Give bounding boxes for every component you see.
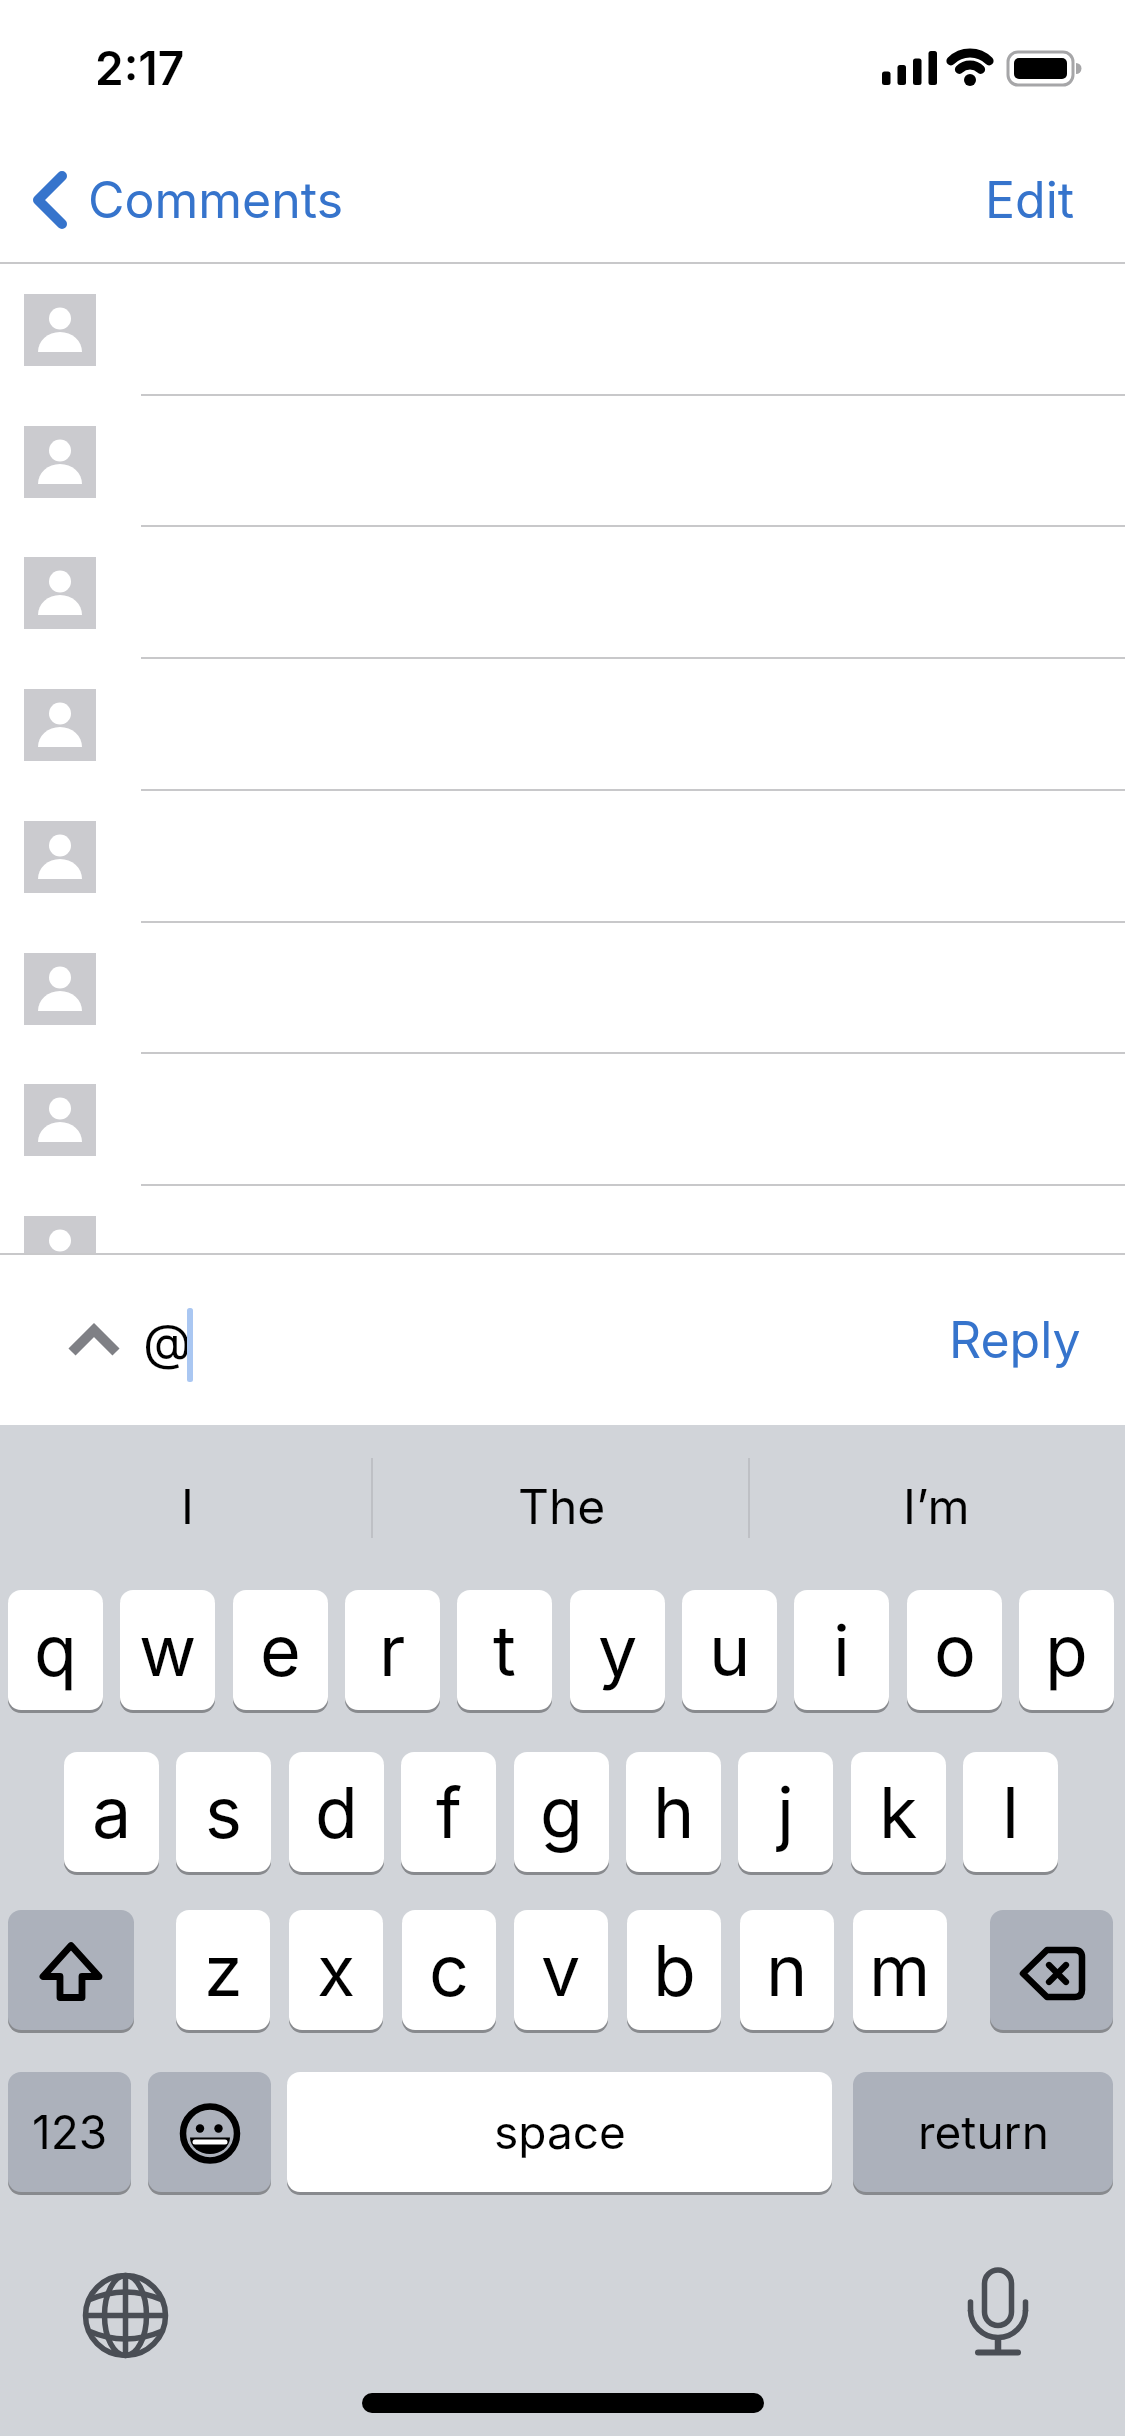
staticText: 2:17 (95, 40, 185, 96)
button[interactable]: j (738, 1752, 833, 1872)
button[interactable]: r (345, 1590, 440, 1710)
button[interactable]: z (176, 1910, 270, 2030)
staticText: f (436, 1770, 462, 1855)
staticText: g (540, 1770, 583, 1855)
staticText: c (429, 1928, 469, 2013)
button[interactable] (0, 526, 1125, 658)
staticText: The (518, 1477, 606, 1535)
button[interactable]: Edit (960, 162, 1100, 238)
button[interactable]: i (794, 1590, 889, 1710)
button[interactable]: g (514, 1752, 609, 1872)
button[interactable]: q (8, 1590, 103, 1710)
staticText: b (653, 1928, 696, 2013)
button[interactable] (148, 2072, 271, 2192)
staticText: a (92, 1770, 132, 1855)
staticText: o (934, 1608, 976, 1693)
button[interactable] (0, 263, 1125, 395)
staticText: Reply (949, 1310, 1081, 1370)
button[interactable]: w (120, 1590, 215, 1710)
staticText: @ (143, 1312, 192, 1372)
button[interactable]: p (1019, 1590, 1114, 1710)
button[interactable]: e (233, 1590, 328, 1710)
button[interactable] (52, 1312, 136, 1372)
button[interactable] (0, 922, 1125, 1054)
staticText: n (766, 1928, 808, 2013)
staticText: I’m (903, 1477, 970, 1535)
button[interactable]: o (907, 1590, 1002, 1710)
staticText: 123 (32, 2104, 108, 2160)
staticText: z (204, 1928, 243, 2013)
button[interactable]: n (740, 1910, 834, 2030)
staticText: m (869, 1928, 931, 2013)
button[interactable]: t (457, 1590, 552, 1710)
button[interactable]: h (626, 1752, 721, 1872)
button[interactable] (73, 2264, 177, 2368)
button[interactable]: I (0, 1425, 375, 1587)
button[interactable]: space (287, 2072, 832, 2192)
button[interactable]: Reply (930, 1305, 1100, 1375)
staticText: return (918, 2104, 1049, 2160)
staticText: u (709, 1608, 751, 1693)
button[interactable]: m (853, 1910, 947, 2030)
staticText: y (598, 1608, 638, 1693)
staticText: Comments (88, 170, 344, 230)
button[interactable]: u (682, 1590, 777, 1710)
button[interactable]: Comments (20, 162, 350, 238)
staticText: v (541, 1928, 581, 2013)
button[interactable]: b (627, 1910, 721, 2030)
button[interactable]: a (64, 1752, 159, 1872)
button[interactable]: x (289, 1910, 383, 2030)
staticText: q (34, 1608, 77, 1693)
button[interactable]: k (851, 1752, 946, 1872)
staticText: i (833, 1608, 850, 1693)
staticText: s (205, 1770, 242, 1855)
staticText: I (181, 1477, 194, 1535)
button[interactable] (0, 1053, 1125, 1185)
button[interactable]: c (402, 1910, 496, 2030)
staticText: d (315, 1770, 358, 1855)
staticText: l (1002, 1770, 1019, 1855)
staticText: Edit (985, 170, 1075, 230)
button[interactable]: return (853, 2072, 1113, 2192)
button[interactable] (950, 2255, 1050, 2365)
button[interactable]: The (375, 1425, 748, 1587)
button[interactable] (0, 1185, 1125, 1317)
button[interactable] (0, 790, 1125, 922)
staticText: t (493, 1608, 516, 1693)
staticText: w (139, 1608, 197, 1693)
staticText: r (379, 1608, 406, 1693)
staticText: j (777, 1770, 794, 1855)
button[interactable]: l (963, 1752, 1058, 1872)
button[interactable]: v (514, 1910, 608, 2030)
staticText: k (879, 1770, 918, 1855)
button[interactable]: I’m (748, 1425, 1125, 1587)
staticText: h (653, 1770, 695, 1855)
button[interactable] (8, 1910, 134, 2030)
button[interactable] (0, 658, 1125, 790)
button[interactable] (990, 1910, 1113, 2030)
staticText: space (494, 2104, 626, 2160)
button[interactable]: d (289, 1752, 384, 1872)
button[interactable]: f (401, 1752, 496, 1872)
staticText: e (260, 1608, 301, 1693)
button[interactable] (0, 395, 1125, 527)
button[interactable]: y (570, 1590, 665, 1710)
staticText: x (317, 1928, 356, 2013)
button[interactable]: 123 (8, 2072, 131, 2192)
button[interactable]: s (176, 1752, 271, 1872)
staticText: p (1045, 1608, 1088, 1693)
